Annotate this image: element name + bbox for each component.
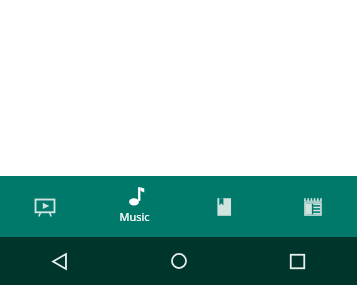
button[interactable]: Back bbox=[0, 237, 119, 285]
staticText: Music bbox=[119, 209, 150, 224]
button[interactable]: Movies bbox=[0, 176, 90, 237]
button[interactable]: Music bbox=[90, 176, 179, 237]
button[interactable]: Newsstand bbox=[268, 176, 357, 237]
button[interactable]: Home bbox=[119, 237, 238, 285]
button[interactable]: Books bbox=[179, 176, 268, 237]
button[interactable]: Recent apps bbox=[238, 237, 357, 285]
